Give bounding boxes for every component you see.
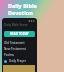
button[interactable]: READ TODAY xyxy=(4,31,35,37)
button[interactable]: New Testament xyxy=(4,46,35,52)
staticText: Devotion xyxy=(8,9,33,16)
button[interactable]: More options xyxy=(28,19,35,23)
button[interactable]: Psalms xyxy=(4,52,35,58)
staticText: New Testament xyxy=(4,47,26,51)
staticText: READ TODAY xyxy=(10,32,29,36)
staticText: Psalms xyxy=(4,53,14,57)
button[interactable]: Old Testament xyxy=(4,40,35,46)
staticText: Old Testament xyxy=(4,41,25,45)
staticText: Daily Bible Verse xyxy=(4,23,28,27)
button[interactable]: Daily Prayer xyxy=(4,58,35,64)
staticText: Daily Bible xyxy=(8,2,37,9)
staticText: Daily Prayer xyxy=(9,59,26,63)
